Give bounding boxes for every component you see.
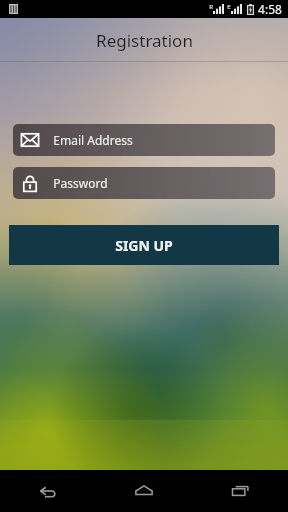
button[interactable]: Password: [13, 167, 275, 199]
staticText: E: [227, 3, 231, 11]
staticText: R: [209, 3, 213, 11]
button[interactable]: Home: [96, 470, 192, 512]
button[interactable]: Recent apps: [192, 470, 288, 512]
staticText: Email Address: [53, 132, 133, 148]
staticText: 4:58: [258, 1, 282, 17]
button[interactable]: Back: [0, 470, 96, 512]
button[interactable]: SIGN UP: [9, 225, 279, 265]
staticText: SIGN UP: [115, 236, 173, 255]
staticText: Password: [53, 175, 108, 191]
button[interactable]: Email Address: [13, 124, 275, 156]
staticText: Registration: [96, 29, 193, 52]
